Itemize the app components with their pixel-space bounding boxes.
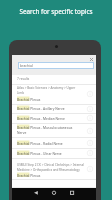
staticText: Nerve [17, 130, 27, 134]
staticText: Brachial Plexus [17, 97, 41, 101]
button[interactable] [12, 148, 96, 158]
button[interactable] [12, 104, 96, 114]
staticText: Atlas > Basic Sciences > Anatomy > Upper [17, 86, 76, 90]
button[interactable] [12, 123, 96, 138]
staticText: Brachial Plexus - Axillary Nerve [17, 106, 65, 110]
staticText: Medicine > Orthopaedics and Rheumatology [17, 168, 80, 172]
button[interactable]: Close search [88, 56, 95, 63]
staticText: 7 results [17, 77, 30, 81]
staticText: Limb [17, 91, 24, 95]
staticText: brachial [20, 63, 33, 68]
staticText: Search for specific topics [0, 7, 112, 16]
button[interactable] [12, 113, 96, 122]
button[interactable]: brachial [18, 62, 94, 69]
button[interactable] [12, 158, 96, 179]
staticText: Brachial Plexus - Median Nerve [17, 116, 65, 120]
button[interactable] [12, 137, 96, 148]
staticText: Brachial Plexus - Ulnar Nerve [17, 151, 62, 155]
staticText: USMLE Step 2 CK > Clinical Clerkships > … [17, 163, 84, 167]
button[interactable] [12, 84, 96, 104]
staticText: Brachial Plexus - Radial Nerve [17, 141, 63, 145]
staticText: Brachial Plexus [17, 173, 41, 177]
staticText: Brachial Plexus - Musculocutaneous [17, 125, 73, 129]
